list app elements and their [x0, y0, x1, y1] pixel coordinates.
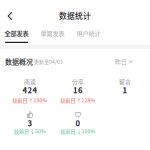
staticText: 单篇发表 [40, 29, 64, 37]
staticText: 数据概况 [5, 56, 33, 66]
staticText: 16 [73, 84, 83, 96]
staticText: 全部发表 [4, 29, 28, 37]
staticText: 数据统计 [59, 10, 91, 21]
staticText: 昨日 [115, 57, 127, 66]
button[interactable]: 单篇发表 [40, 29, 65, 43]
button[interactable]: 用户统计 [76, 29, 101, 43]
button[interactable]: 返回 [1, 7, 19, 25]
staticText: 较前日 ↓50% [14, 127, 46, 134]
staticText: 较前日 ↑190% [12, 96, 47, 103]
button[interactable]: 全部发表 [4, 29, 29, 43]
staticText: 分享 [72, 77, 84, 86]
staticText: 更新至04/03 [33, 58, 63, 65]
staticText: 留言 [119, 77, 131, 86]
staticText: 较前日 ↓100% [60, 127, 95, 134]
staticText: 1 [122, 84, 127, 96]
staticText: 较前日 ↑128% [60, 96, 95, 103]
staticText: 424 [22, 84, 37, 96]
button[interactable]: 昨日 [114, 57, 134, 66]
staticText: 3 [27, 117, 32, 129]
staticText: 用户统计 [76, 29, 100, 37]
staticText: 阅读 [24, 77, 36, 86]
staticText: 0 [75, 117, 80, 129]
